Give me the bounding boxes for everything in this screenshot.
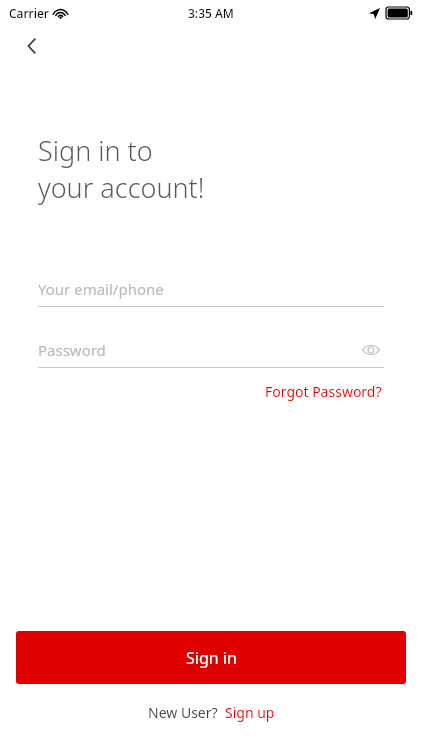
staticText: your account! <box>38 169 205 206</box>
staticText: 3:35 AM <box>188 5 234 21</box>
staticText: Sign up <box>225 703 275 722</box>
staticText: Sign in to <box>38 132 153 169</box>
button[interactable]: Show password <box>358 337 384 363</box>
button[interactable]: Sign up <box>225 703 275 722</box>
button[interactable]: Sign in <box>16 631 406 684</box>
staticText: Password <box>38 340 106 360</box>
button[interactable]: Back <box>14 28 50 64</box>
staticText: Your email/phone <box>38 279 164 299</box>
button[interactable]: Forgot Password? <box>261 378 386 405</box>
staticText: Sign in <box>186 647 237 669</box>
staticText: Carrier <box>9 5 49 21</box>
staticText: New User? <box>148 703 218 722</box>
staticText: Forgot Password? <box>265 382 382 401</box>
